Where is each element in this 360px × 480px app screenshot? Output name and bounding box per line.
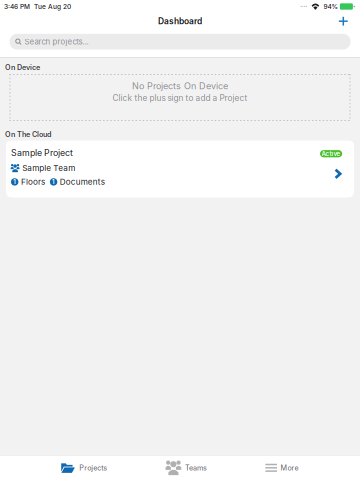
- button[interactable]: Teams: [144, 456, 229, 480]
- staticText: On Device: [5, 63, 40, 72]
- button[interactable]: Projects: [24, 456, 144, 480]
- staticText: Projects: [79, 463, 107, 472]
- staticText: Dashboard: [158, 16, 202, 26]
- staticText: Floors: [21, 177, 45, 187]
- staticText: 3:46 PM: [4, 2, 30, 10]
- staticText: 1: [52, 178, 55, 185]
- staticText: Sample Project: [11, 147, 73, 158]
- button[interactable]: Add project: [334, 14, 353, 28]
- staticText: Teams: [185, 463, 207, 472]
- staticText: Tue Aug 20: [34, 2, 71, 10]
- staticText: Active: [322, 150, 341, 157]
- button[interactable]: Search projects...: [9, 34, 350, 50]
- button[interactable]: Sample Project: [6, 140, 354, 197]
- staticText: Search projects...: [24, 37, 88, 46]
- staticText: 94%: [323, 2, 337, 10]
- staticText: 1: [13, 178, 16, 185]
- staticText: More: [281, 463, 299, 472]
- staticText: Click the plus sign to add a Project: [112, 93, 247, 103]
- staticText: Sample Team: [22, 163, 75, 173]
- button[interactable]: More: [229, 456, 335, 480]
- staticText: Documents: [60, 177, 105, 187]
- staticText: On The Cloud: [5, 130, 51, 139]
- staticText: No Projects On Device: [132, 80, 228, 91]
